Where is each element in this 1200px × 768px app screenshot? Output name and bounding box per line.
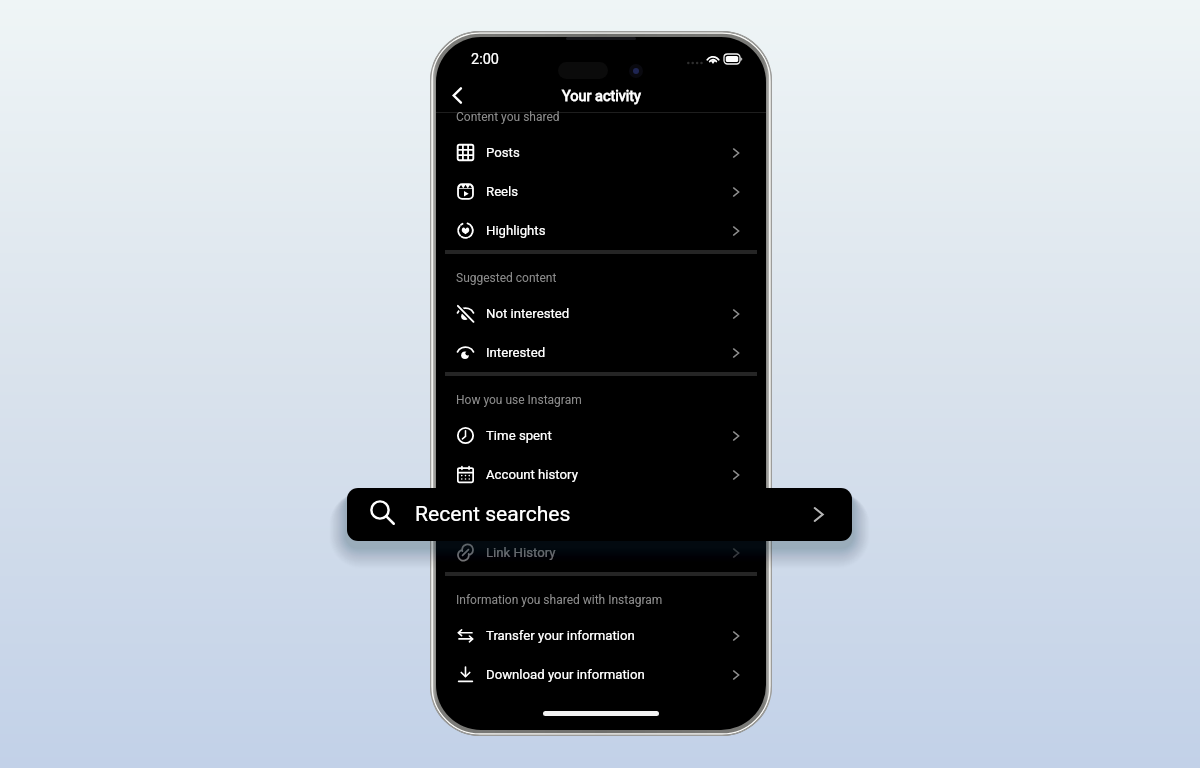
staticText: Interested: [486, 345, 546, 360]
button[interactable]: Account history: [436, 455, 766, 494]
staticText: Information you shared with Instagram: [456, 593, 663, 607]
staticText: Download your information: [486, 667, 645, 682]
button[interactable]: Download your information: [436, 655, 766, 694]
staticText: Your activity: [562, 88, 641, 105]
staticText: Account history: [486, 467, 578, 482]
staticText: Recent searches: [415, 501, 571, 526]
button[interactable]: Transfer your information: [436, 616, 766, 655]
button[interactable]: Recent searches: [347, 488, 852, 541]
button[interactable]: Posts: [436, 133, 766, 172]
staticText: Time spent: [486, 428, 552, 443]
button[interactable]: Time spent: [436, 416, 766, 455]
button[interactable]: Your activity off Meta technologies: [436, 494, 766, 533]
staticText: Content you shared: [456, 110, 560, 124]
staticText: Posts: [486, 145, 520, 160]
button[interactable]: Interested: [436, 333, 766, 372]
staticText: Highlights: [486, 223, 546, 238]
staticText: How you use Instagram: [456, 393, 582, 407]
button[interactable]: Highlights: [436, 211, 766, 250]
button[interactable]: Reels: [436, 172, 766, 211]
staticText: 2:00: [471, 51, 499, 68]
staticText: Reels: [486, 184, 519, 199]
staticText: Link History: [486, 545, 556, 560]
button[interactable]: Not interested: [436, 294, 766, 333]
staticText: Transfer your information: [486, 628, 635, 643]
staticText: Suggested content: [456, 271, 557, 285]
staticText: Not interested: [486, 306, 570, 321]
button[interactable]: Link History: [436, 533, 766, 572]
button[interactable]: Back: [439, 77, 475, 113]
staticText: Your activity off Meta technologies: [486, 506, 690, 521]
